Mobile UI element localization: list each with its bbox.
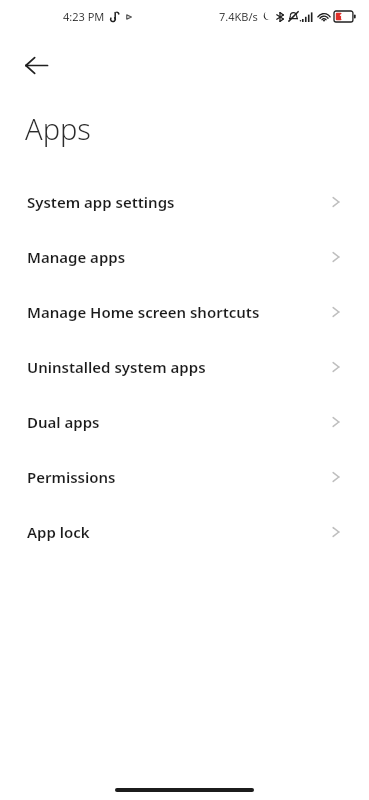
staticText: Manage apps [27, 247, 126, 267]
staticText: App lock [27, 522, 90, 542]
staticText: Uninstalled system apps [27, 357, 206, 377]
staticText: System app settings [27, 192, 175, 212]
button[interactable]: Manage apps [0, 229, 369, 284]
button[interactable]: Uninstalled system apps [0, 339, 369, 394]
button[interactable]: System app settings [0, 174, 369, 229]
staticText: 4:23 PM [63, 9, 105, 24]
button[interactable]: Permissions [0, 449, 369, 504]
button[interactable]: App lock [0, 504, 369, 559]
staticText: 17 [339, 12, 348, 22]
staticText: Dual apps [27, 412, 100, 432]
staticText: 7.4KB/s [219, 9, 258, 24]
button[interactable]: Dual apps [0, 394, 369, 449]
button[interactable]: Back [14, 43, 58, 87]
button[interactable]: Manage Home screen shortcuts [0, 284, 369, 339]
staticText: Permissions [27, 467, 116, 487]
staticText: Apps [25, 109, 91, 148]
staticText: Manage Home screen shortcuts [27, 302, 260, 322]
